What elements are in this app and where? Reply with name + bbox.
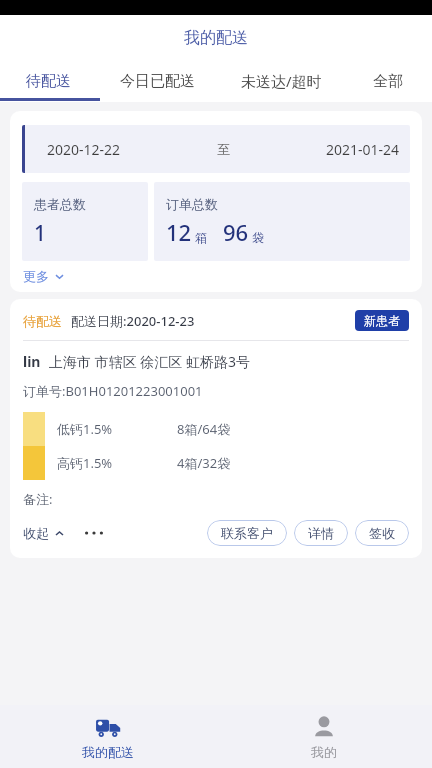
staticText: 12 bbox=[166, 217, 192, 247]
staticText: 联系客户 bbox=[221, 525, 273, 541]
button[interactable]: 新患者 bbox=[355, 310, 409, 331]
staticText: 低钙1.5% bbox=[57, 420, 177, 438]
staticText: 待配送 bbox=[26, 72, 71, 91]
staticText: 我的 bbox=[311, 744, 337, 760]
staticText: 待配送 bbox=[23, 313, 62, 329]
staticText: 签收 bbox=[369, 525, 395, 541]
staticText: 96 bbox=[223, 217, 249, 247]
staticText: 上海市 市辖区 徐汇区 虹桥路3号 bbox=[49, 352, 250, 371]
button[interactable]: 订单总数 bbox=[154, 182, 410, 261]
staticText: lin bbox=[23, 352, 41, 371]
staticText: 备注: bbox=[23, 490, 53, 508]
button[interactable]: More options bbox=[81, 524, 107, 542]
button[interactable]: 签收 bbox=[355, 520, 409, 546]
staticText: 订单号:B01H01201223001001 bbox=[23, 382, 203, 400]
staticText: 未送达/超时 bbox=[241, 71, 322, 91]
staticText: 我的配送 bbox=[184, 28, 248, 48]
staticText: 全部 bbox=[373, 72, 403, 91]
staticText: 新患者 bbox=[364, 313, 400, 328]
staticText: 1 bbox=[34, 219, 47, 248]
button[interactable]: 全部 bbox=[344, 60, 432, 102]
staticText: 8箱/64袋 bbox=[177, 420, 231, 438]
button[interactable]: 我的配送 bbox=[0, 705, 216, 768]
staticText: 箱 bbox=[195, 230, 207, 245]
button[interactable]: 今日已配送 bbox=[96, 60, 218, 102]
staticText: 高钙1.5% bbox=[57, 454, 177, 472]
button[interactable]: 更多 bbox=[22, 266, 66, 286]
staticText: 袋 bbox=[252, 230, 264, 245]
staticText: 2021-01-24 bbox=[326, 140, 400, 159]
button[interactable]: 未送达/超时 bbox=[218, 60, 344, 102]
staticText: 收起 bbox=[23, 525, 49, 541]
staticText: 4箱/32袋 bbox=[177, 454, 231, 472]
staticText: 2020-12-22 bbox=[47, 140, 121, 159]
staticText: 今日已配送 bbox=[120, 72, 195, 91]
button[interactable]: 详情 bbox=[294, 520, 348, 546]
staticText: 配送日期:2020-12-23 bbox=[71, 312, 195, 330]
staticText: 详情 bbox=[308, 525, 334, 541]
staticText: 更多 bbox=[23, 268, 49, 284]
button[interactable]: 待配送 bbox=[0, 60, 96, 102]
staticText: 我的配送 bbox=[82, 744, 134, 760]
staticText: 至 bbox=[217, 141, 230, 157]
staticText: 患者总数 bbox=[34, 196, 86, 212]
button[interactable]: 患者总数 bbox=[22, 182, 148, 261]
button[interactable]: 收起 bbox=[23, 522, 65, 544]
button[interactable]: 联系客户 bbox=[207, 520, 287, 546]
staticText: 订单总数 bbox=[166, 196, 218, 212]
button[interactable]: 我的 bbox=[216, 705, 432, 768]
button[interactable]: 2020-12-22 bbox=[22, 125, 410, 173]
